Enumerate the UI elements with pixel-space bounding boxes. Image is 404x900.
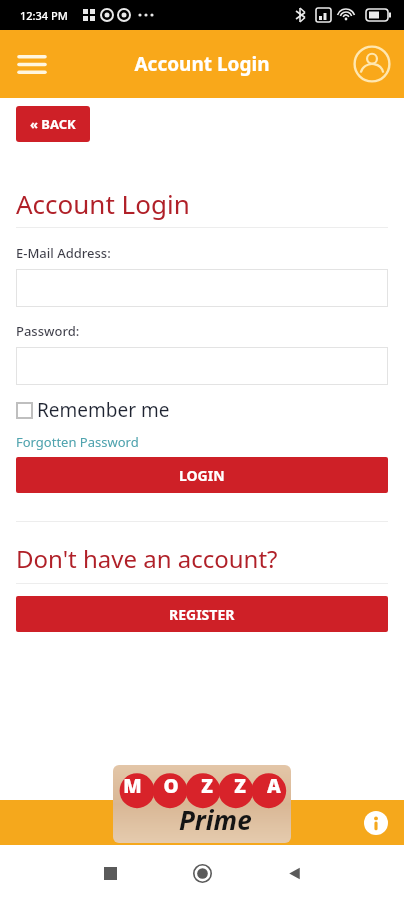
staticText: Account Login <box>134 51 270 77</box>
button[interactable] <box>16 347 388 385</box>
staticText: A <box>267 773 281 799</box>
button[interactable]: « BACK <box>16 106 90 142</box>
staticText: LOGIN <box>179 466 225 485</box>
button[interactable]: Back <box>274 853 314 893</box>
staticText: « BACK <box>30 115 76 133</box>
staticText: Prime <box>179 802 252 837</box>
button[interactable]: Recents <box>90 853 130 893</box>
button[interactable]: Account <box>348 40 396 88</box>
staticText: 12:34 PM <box>20 8 68 23</box>
staticText: REGISTER <box>169 605 235 624</box>
staticText: Don't have an account? <box>16 542 278 575</box>
staticText: Account Login <box>16 186 190 221</box>
staticText: Z <box>201 773 213 799</box>
button[interactable]: Home <box>182 853 222 893</box>
staticText: O <box>163 773 179 799</box>
button[interactable]: Forgotten Password <box>16 433 139 451</box>
staticText: Remember me <box>37 397 170 423</box>
button[interactable]: REGISTER <box>16 596 388 632</box>
staticText: E-Mail Address: <box>16 244 111 262</box>
button[interactable] <box>16 269 388 307</box>
staticText: M <box>123 773 142 799</box>
button[interactable]: Information <box>357 804 395 842</box>
button[interactable]: Open navigation menu <box>8 40 56 88</box>
button[interactable]: Remember me <box>16 397 170 423</box>
button[interactable]: LOGIN <box>16 457 388 493</box>
button[interactable]: Mozza Prime <box>113 765 291 843</box>
staticText: Z <box>234 773 246 799</box>
staticText: Password: <box>16 322 80 340</box>
